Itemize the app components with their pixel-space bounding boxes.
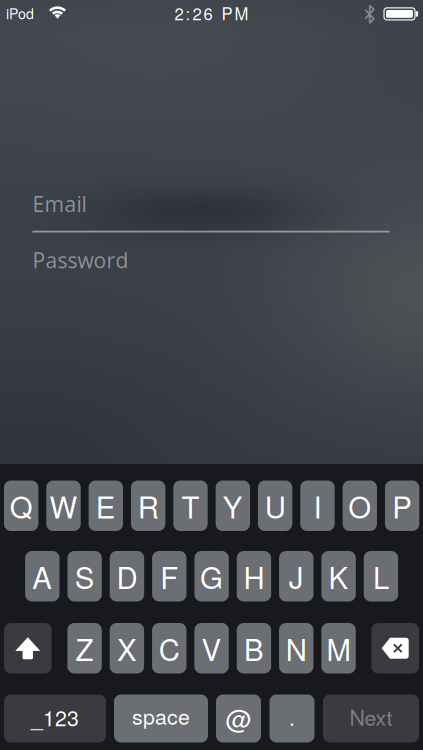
button[interactable]: F xyxy=(152,551,186,601)
staticText: H xyxy=(243,555,264,597)
staticText: R xyxy=(138,485,159,527)
staticText: B xyxy=(244,627,264,669)
staticText: T xyxy=(181,485,199,527)
staticText: @ xyxy=(225,699,251,736)
staticText: A xyxy=(32,555,52,597)
button[interactable]: Y xyxy=(216,480,250,531)
button[interactable]: Email xyxy=(32,189,389,232)
button[interactable]: A xyxy=(25,551,59,601)
staticText: Next xyxy=(349,701,392,732)
staticText: Y xyxy=(223,485,243,527)
button[interactable]: B xyxy=(237,623,271,673)
staticText: Email xyxy=(32,189,86,218)
button[interactable]: W xyxy=(46,480,81,531)
staticText: P xyxy=(392,485,412,527)
button[interactable]: O xyxy=(343,480,377,531)
button[interactable]: N xyxy=(279,623,313,673)
staticText: 2:26 PM xyxy=(174,1,248,25)
button[interactable]: Shift xyxy=(4,623,52,673)
staticText: Z xyxy=(76,627,94,669)
staticText: . xyxy=(289,701,295,732)
button[interactable]: @ xyxy=(216,694,261,742)
button[interactable]: Password xyxy=(32,248,389,272)
button[interactable]: G xyxy=(194,551,229,601)
staticText: E xyxy=(96,485,116,527)
button[interactable]: . xyxy=(269,694,314,742)
button[interactable]: L xyxy=(364,551,398,601)
staticText: K xyxy=(329,555,349,597)
button[interactable]: I xyxy=(300,480,335,531)
button[interactable]: Z xyxy=(67,623,102,673)
staticText: I xyxy=(313,485,321,527)
button[interactable]: Delete xyxy=(371,623,419,673)
staticText: C xyxy=(159,627,180,669)
button[interactable]: space xyxy=(114,694,208,742)
staticText: space xyxy=(132,700,190,731)
staticText: iPod xyxy=(6,3,34,23)
button[interactable]: T xyxy=(173,480,208,531)
staticText: G xyxy=(200,555,223,597)
button[interactable]: S xyxy=(67,551,102,601)
button[interactable]: U xyxy=(258,480,292,531)
staticText: W xyxy=(49,485,77,527)
staticText: _123 xyxy=(31,702,79,732)
staticText: F xyxy=(160,555,178,597)
button[interactable]: _123 xyxy=(4,694,106,742)
staticText: L xyxy=(373,555,389,597)
staticText: Q xyxy=(10,485,33,527)
button[interactable]: P xyxy=(385,480,419,531)
staticText: X xyxy=(117,627,137,669)
button[interactable]: K xyxy=(321,551,356,601)
staticText: O xyxy=(348,485,371,527)
staticText: V xyxy=(202,627,222,669)
button[interactable]: H xyxy=(237,551,271,601)
button[interactable]: Q xyxy=(4,480,38,531)
button[interactable]: V xyxy=(194,623,229,673)
staticText: D xyxy=(116,555,137,597)
button[interactable]: J xyxy=(279,551,313,601)
button[interactable]: X xyxy=(110,623,144,673)
button[interactable]: M xyxy=(321,623,356,673)
staticText: S xyxy=(75,555,95,597)
staticText: N xyxy=(286,627,307,669)
button[interactable]: Next xyxy=(323,694,419,742)
staticText: Password xyxy=(32,246,128,274)
staticText: J xyxy=(289,555,304,597)
staticText: M xyxy=(327,627,351,669)
button[interactable]: R xyxy=(131,480,165,531)
button[interactable]: E xyxy=(89,480,123,531)
staticText: U xyxy=(265,485,286,527)
button[interactable]: C xyxy=(152,623,186,673)
button[interactable]: D xyxy=(110,551,144,601)
